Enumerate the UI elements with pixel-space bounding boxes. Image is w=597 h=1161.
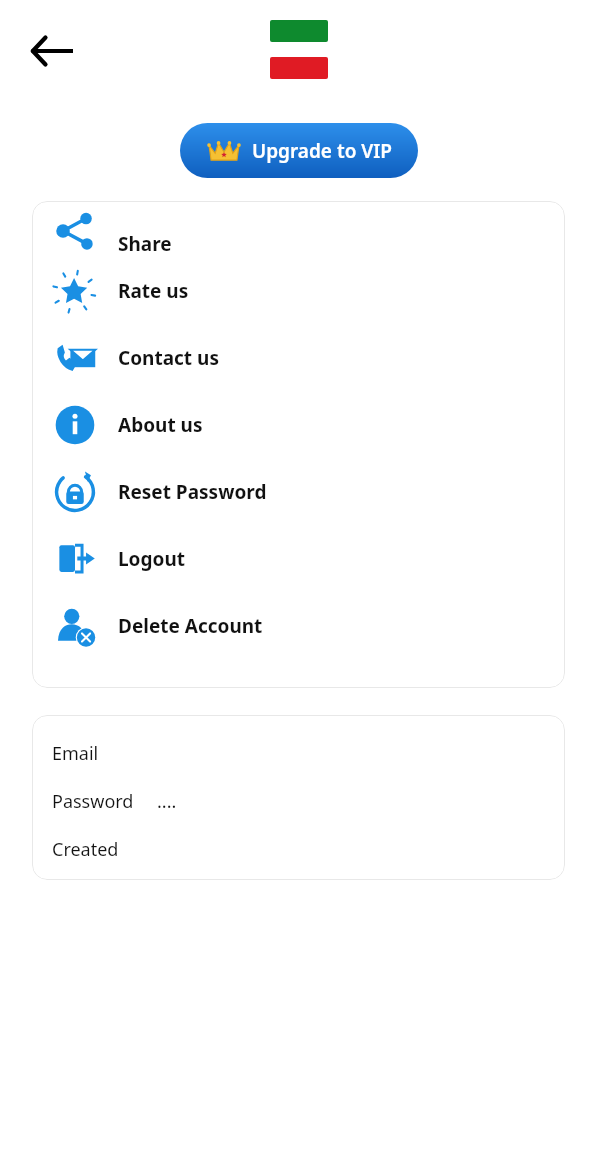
button[interactable]: About us <box>32 391 565 458</box>
staticText: Share <box>118 231 172 257</box>
staticText: Rate us <box>118 278 189 304</box>
staticText: About us <box>118 412 203 438</box>
button[interactable]: Logout <box>32 525 565 592</box>
button[interactable]: Reset Password <box>32 458 565 525</box>
staticText: Contact us <box>118 345 219 371</box>
staticText: Upgrade to VIP <box>252 138 392 164</box>
staticText: Reset Password <box>118 479 267 505</box>
staticText: .... <box>157 789 177 814</box>
staticText: Delete Account <box>118 613 263 639</box>
button[interactable]: Upgrade to VIP <box>180 123 418 178</box>
button[interactable]: Rate us <box>32 257 565 324</box>
staticText: Created <box>52 837 119 862</box>
button[interactable]: Delete Account <box>32 592 565 659</box>
button[interactable]: Contact us <box>32 324 565 391</box>
staticText: Logout <box>118 546 185 572</box>
button[interactable]: Back <box>18 29 86 73</box>
staticText: Email <box>52 741 99 766</box>
button[interactable]: Share <box>32 201 565 257</box>
staticText: Password <box>52 789 134 814</box>
